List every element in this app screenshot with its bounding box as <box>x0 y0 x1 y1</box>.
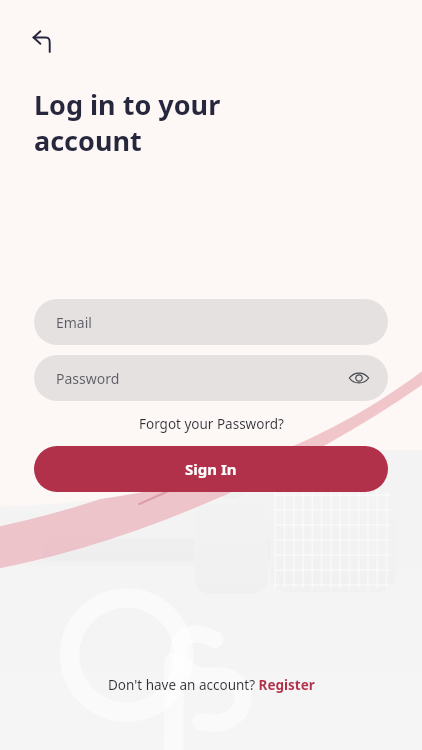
button[interactable]: Sign In <box>34 446 388 492</box>
staticText: Email <box>56 313 92 332</box>
button[interactable]: Show password <box>342 361 376 395</box>
staticText: Log in to your account <box>34 86 221 159</box>
button[interactable]: Forgot your Password? <box>131 413 292 435</box>
button[interactable]: Don't have an account? Register <box>98 672 325 698</box>
staticText: Password <box>56 369 120 388</box>
button[interactable]: Password <box>34 355 388 401</box>
button[interactable]: Back <box>22 20 66 64</box>
staticText: Don't have an account? Register <box>108 676 315 694</box>
staticText: Sign In <box>185 459 237 479</box>
button[interactable]: Email <box>34 299 388 345</box>
staticText: Forgot your Password? <box>139 415 284 433</box>
